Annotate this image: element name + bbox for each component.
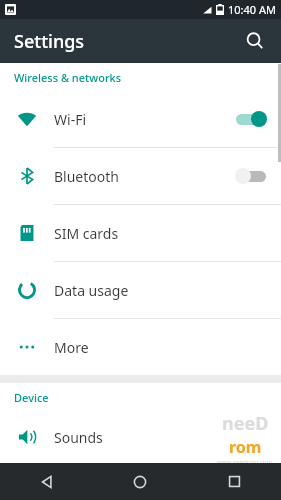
button[interactable]: On (235, 110, 267, 128)
staticText: www.needrom.com (217, 458, 273, 466)
staticText: neeD (222, 411, 269, 436)
button[interactable]: SIM cards (0, 205, 281, 261)
button[interactable]: Bluetooth (0, 148, 281, 204)
button[interactable]: Back (0, 463, 93, 500)
staticText: Data usage (54, 281, 281, 300)
staticText: rom (229, 436, 262, 458)
staticText: Settings (14, 29, 85, 54)
button[interactable]: Home (93, 463, 187, 500)
button[interactable]: Wi-Fi (0, 91, 281, 147)
staticText: More (54, 338, 281, 357)
staticText: Wireless & networks (14, 70, 122, 85)
staticText: Wi-Fi (54, 110, 235, 129)
button[interactable]: More (0, 319, 281, 375)
button[interactable]: Sounds (0, 411, 281, 463)
button[interactable]: Data usage (0, 262, 281, 318)
staticText: Sounds (54, 428, 281, 447)
button[interactable]: Recent apps (187, 463, 281, 500)
staticText: Bluetooth (54, 167, 235, 186)
button[interactable]: Search (235, 21, 275, 61)
staticText: SIM cards (54, 224, 281, 243)
staticText: 10:40 AM (228, 2, 276, 17)
button[interactable]: Off (235, 167, 267, 185)
staticText: Device (14, 390, 49, 405)
